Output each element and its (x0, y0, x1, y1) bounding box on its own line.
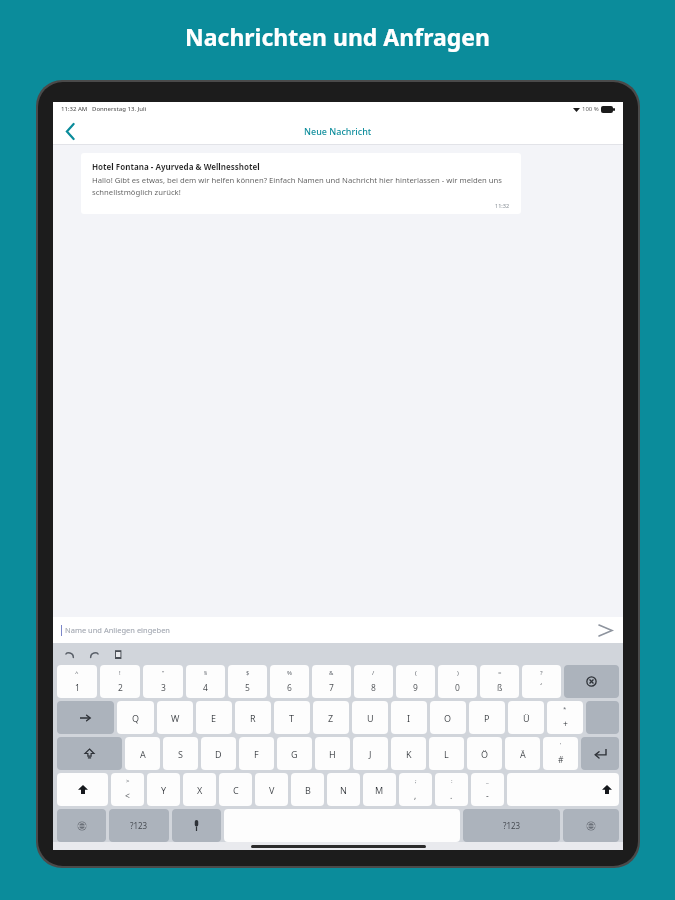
staticText: W (171, 712, 180, 724)
button[interactable]: A (125, 737, 160, 770)
button[interactable]: ! (100, 665, 140, 698)
button[interactable]: § (186, 665, 225, 698)
button[interactable]: M (363, 773, 396, 806)
staticText: § (204, 669, 208, 677)
button[interactable]: ?123 (109, 809, 169, 842)
staticText: L (444, 748, 449, 760)
staticText: Ü (523, 712, 530, 724)
staticText: 7 (329, 682, 334, 694)
button[interactable]: Ä (505, 737, 540, 770)
button[interactable]: Eingabe (581, 737, 619, 770)
button[interactable]: X (183, 773, 216, 806)
staticText: 2 (118, 682, 123, 694)
button[interactable]: Hotel Fontana - Ayurveda & Wellnesshotel (81, 153, 521, 214)
button[interactable]: Name und Anliegen eingeben (53, 617, 623, 643)
button[interactable]: $ (228, 665, 267, 698)
staticText: 100 % (582, 105, 599, 113)
button[interactable]: ' (543, 737, 578, 770)
staticText: 1 (75, 682, 80, 694)
button[interactable]: Löschen (564, 665, 619, 698)
staticText: A (140, 748, 146, 760)
button[interactable]: Q (117, 701, 154, 734)
button[interactable]: G (277, 737, 312, 770)
staticText: P (484, 712, 490, 724)
staticText: 6 (287, 682, 292, 694)
button[interactable]: O (430, 701, 466, 734)
button[interactable]: > (111, 773, 144, 806)
button[interactable]: ? (522, 665, 561, 698)
button[interactable]: T (274, 701, 310, 734)
button[interactable]: Y (147, 773, 180, 806)
button[interactable]: & (312, 665, 351, 698)
staticText: Ä (520, 748, 526, 760)
button[interactable]: Einfügen (111, 646, 127, 662)
button[interactable]: Emoji (57, 809, 106, 842)
button[interactable]: Feststelltaste (57, 737, 122, 770)
button[interactable]: R (235, 701, 271, 734)
staticText: ?123 (130, 820, 148, 831)
button[interactable]: S (163, 737, 198, 770)
button[interactable]: % (270, 665, 309, 698)
staticText: Name und Anliegen eingeben (65, 625, 171, 635)
button[interactable]: V (255, 773, 288, 806)
button[interactable]: Rückgängig (61, 646, 77, 662)
button[interactable]: K (391, 737, 426, 770)
staticText: ^ (75, 669, 79, 677)
button[interactable]: * (547, 701, 583, 734)
staticText: G (291, 748, 298, 760)
staticText: 4 (203, 682, 208, 694)
button[interactable]: : (435, 773, 468, 806)
staticText: C (233, 784, 239, 796)
button[interactable]: / (354, 665, 393, 698)
button[interactable]: F (239, 737, 274, 770)
button[interactable]: Ö (467, 737, 502, 770)
button[interactable]: H (315, 737, 350, 770)
button[interactable]: W (157, 701, 193, 734)
staticText: Z (328, 712, 334, 724)
button[interactable] (586, 701, 619, 734)
button[interactable]: Mikrofon (172, 809, 221, 842)
button[interactable]: ) (438, 665, 477, 698)
staticText: * (563, 705, 567, 713)
staticText: " (162, 669, 165, 677)
staticText: = (498, 669, 502, 677)
button[interactable]: ^ (57, 665, 97, 698)
button[interactable]: Umschalt (507, 773, 619, 806)
staticText: X (197, 784, 203, 796)
button[interactable]: _ (471, 773, 504, 806)
button[interactable]: E (196, 701, 232, 734)
button[interactable]: ( (396, 665, 435, 698)
button[interactable]: Wiederholen (86, 646, 102, 662)
button[interactable]: B (291, 773, 324, 806)
button[interactable]: Z (313, 701, 349, 734)
staticText: ? (540, 669, 543, 677)
button[interactable]: D (201, 737, 236, 770)
staticText: 8 (371, 682, 376, 694)
staticText: / (372, 669, 375, 677)
staticText: E (211, 712, 217, 724)
staticText: - (486, 790, 489, 802)
button[interactable]: J (353, 737, 388, 770)
button[interactable]: L (429, 737, 464, 770)
button[interactable]: ?123 (463, 809, 560, 842)
button[interactable]: ; (399, 773, 432, 806)
button[interactable]: N (327, 773, 360, 806)
staticText: ( (415, 669, 417, 677)
button[interactable]: Tastatur ausblenden (563, 809, 619, 842)
staticText: N (340, 784, 347, 796)
button[interactable]: P (469, 701, 505, 734)
staticText: U (367, 712, 374, 724)
button[interactable]: Tab (57, 701, 114, 734)
staticText: B (305, 784, 311, 796)
staticText: 11:32 (495, 202, 510, 209)
button[interactable]: Zurück (57, 118, 83, 144)
button[interactable]: Senden (595, 620, 615, 640)
button[interactable]: Umschalt (57, 773, 108, 806)
button[interactable]: C (219, 773, 252, 806)
button[interactable]: U (352, 701, 388, 734)
button[interactable]: = (480, 665, 519, 698)
button[interactable]: Ü (508, 701, 544, 734)
button[interactable]: I (391, 701, 427, 734)
button[interactable]: " (143, 665, 183, 698)
